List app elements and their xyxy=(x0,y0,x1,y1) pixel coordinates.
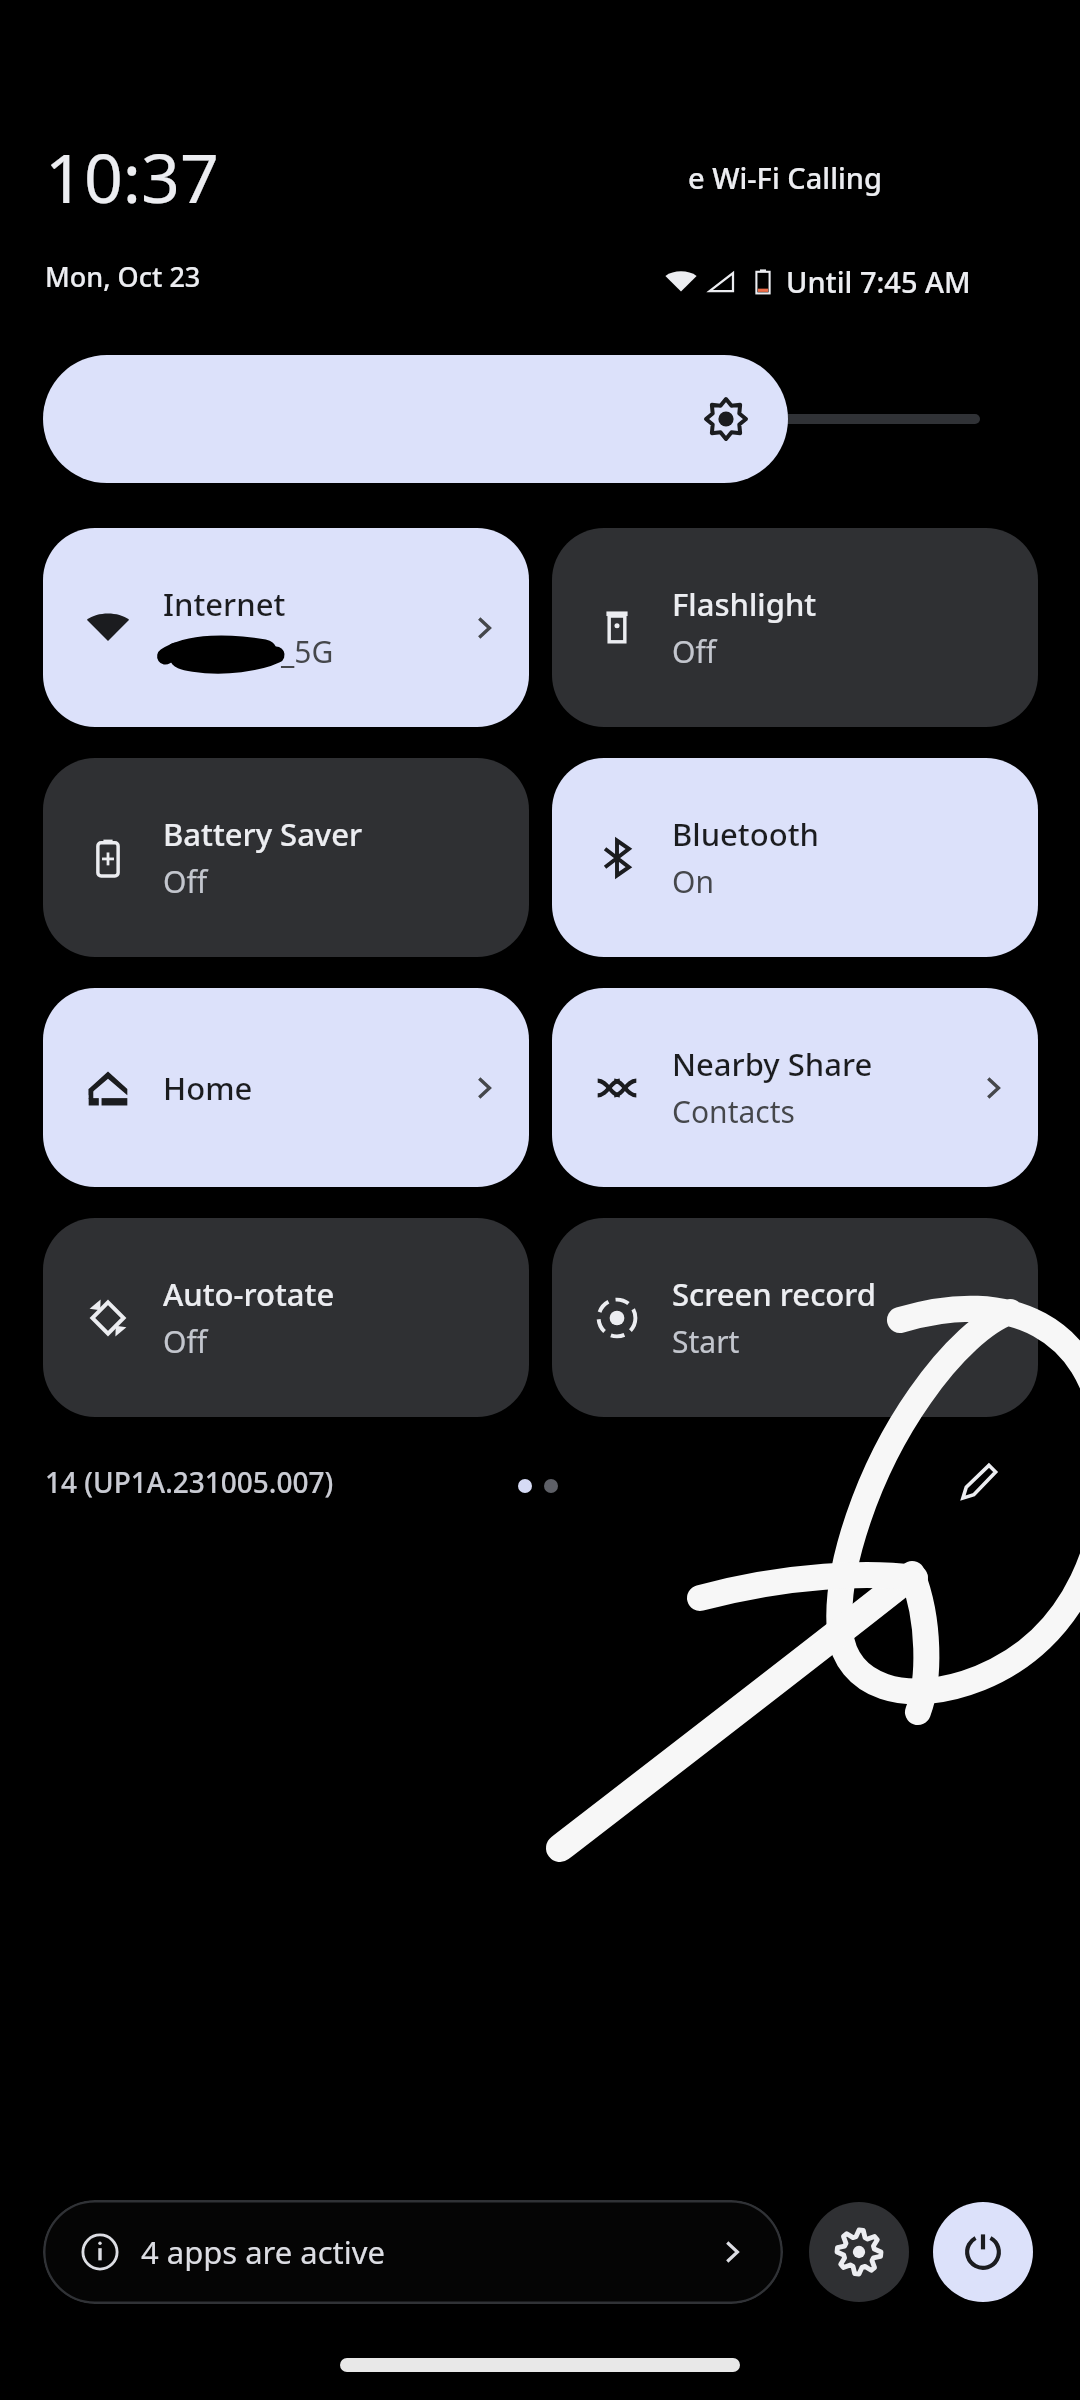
staticText: Contacts xyxy=(672,1091,795,1132)
staticText: Bluetooth xyxy=(672,813,819,855)
staticText: 4 apps are active xyxy=(141,2231,386,2273)
staticText: Start xyxy=(672,1321,740,1362)
button[interactable]: 4 apps are active xyxy=(43,2200,783,2304)
staticText: Auto-rotate xyxy=(163,1273,335,1315)
staticText: Off xyxy=(163,1321,208,1362)
button[interactable]: Edit tiles xyxy=(935,1440,1021,1526)
button[interactable]: Screen record xyxy=(552,1218,1038,1417)
button[interactable]: Battery Saver xyxy=(43,758,529,957)
button[interactable]: Bluetooth xyxy=(552,758,1038,957)
button[interactable]: Nearby Share xyxy=(552,988,1038,1187)
staticText: Off xyxy=(163,861,208,902)
staticText: 10:37 xyxy=(45,130,219,223)
staticText: e Wi-Fi Calling xyxy=(688,158,882,197)
staticText: Flashlight xyxy=(672,583,817,625)
button[interactable]: Home xyxy=(43,988,529,1187)
staticText: On xyxy=(672,861,714,902)
button[interactable]: Flashlight xyxy=(552,528,1038,727)
staticText: Until 7:45 AM xyxy=(786,262,971,301)
button[interactable]: Power xyxy=(933,2202,1033,2302)
button[interactable] xyxy=(43,355,1038,483)
button[interactable]: Internet xyxy=(43,528,529,727)
staticText: 14 (UP1A.231005.007) xyxy=(45,1463,334,1501)
staticText: Internet xyxy=(163,583,286,625)
staticText: Off xyxy=(672,631,717,672)
staticText: Mon, Oct 23 xyxy=(45,258,201,295)
staticText: Home xyxy=(163,1067,253,1109)
staticText: Nearby Share xyxy=(672,1043,873,1085)
button[interactable]: Settings xyxy=(809,2202,909,2302)
staticText: Battery Saver xyxy=(163,813,363,855)
staticText: Screen record xyxy=(672,1273,877,1315)
staticText: _5G xyxy=(281,631,334,672)
button[interactable]: Auto-rotate xyxy=(43,1218,529,1417)
